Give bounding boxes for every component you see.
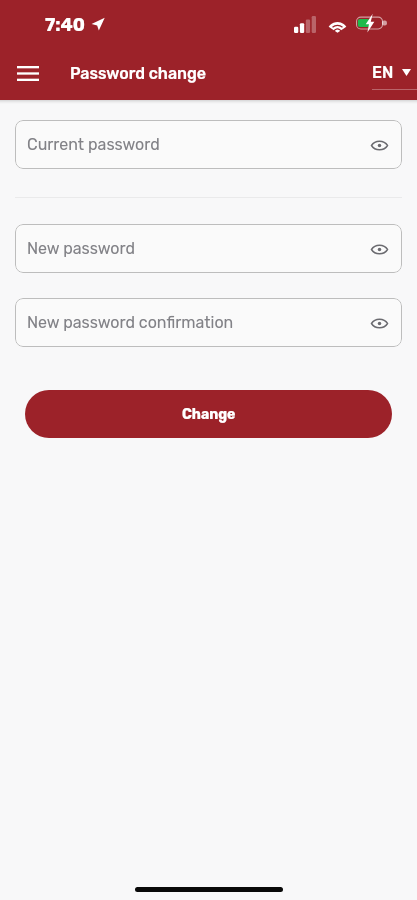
button[interactable]: New password <box>15 224 402 273</box>
button[interactable]: Show password <box>362 232 396 266</box>
staticText: 7:40 <box>45 14 86 35</box>
staticText: EN <box>372 63 394 82</box>
button[interactable]: Open navigation menu <box>6 52 50 96</box>
staticText: New password <box>27 239 135 258</box>
button[interactable]: EN <box>372 48 417 100</box>
button[interactable]: Show password <box>362 306 396 340</box>
staticText: Current password <box>27 135 160 154</box>
button[interactable]: Current password <box>15 120 402 169</box>
button[interactable]: New password confirmation <box>15 298 402 347</box>
staticText: New password confirmation <box>27 313 234 332</box>
button[interactable]: Show password <box>362 128 396 162</box>
button[interactable]: Change <box>25 390 392 438</box>
staticText: Change <box>182 406 236 423</box>
staticText: Password change <box>70 64 207 83</box>
